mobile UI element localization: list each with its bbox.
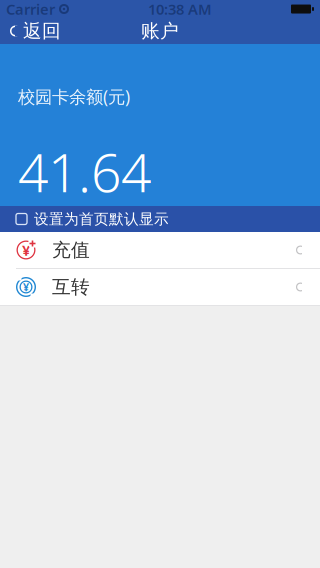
button[interactable]: 设置为首页默认显示 [0, 206, 320, 232]
staticText: 41.64 [18, 136, 151, 207]
staticText: 设置为首页默认显示 [34, 210, 169, 228]
staticText: 账户 [141, 19, 179, 42]
button[interactable]: 返回 [0, 18, 71, 44]
staticText: 互转 [52, 275, 90, 298]
staticText: ¥ [23, 280, 29, 294]
button[interactable]: ¥ [0, 269, 320, 305]
staticText: 校园卡余额(元) [18, 85, 130, 108]
staticText: 10:38 AM [148, 0, 212, 19]
staticText: Carrier [6, 0, 55, 19]
staticText: 充值 [52, 238, 90, 261]
button[interactable]: ¥ [0, 232, 320, 268]
staticText: ¥ [22, 240, 30, 260]
staticText: 返回 [23, 19, 61, 42]
